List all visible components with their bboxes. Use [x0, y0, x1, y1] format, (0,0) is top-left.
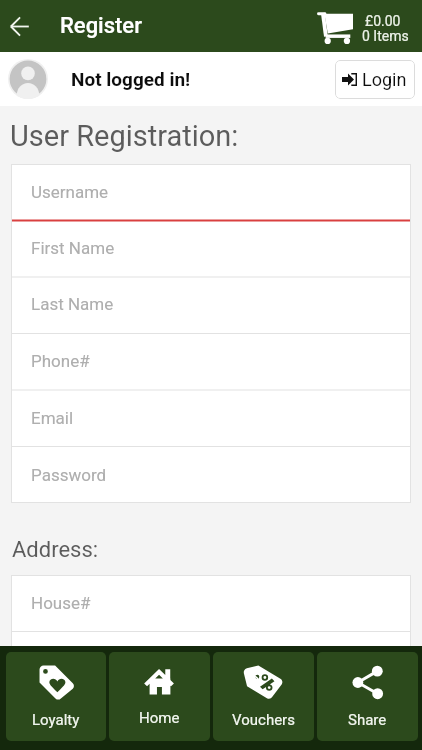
- button[interactable]: First Name: [11, 220, 411, 276]
- staticText: Register: [60, 13, 142, 39]
- staticText: Login: [362, 69, 407, 90]
- button[interactable]: Share: [317, 652, 418, 741]
- button[interactable]: House#: [11, 575, 411, 631]
- button[interactable]: Login: [335, 60, 415, 99]
- staticText: Phone#: [31, 351, 90, 371]
- button[interactable]: Loyalty: [6, 652, 106, 741]
- staticText: Street: [31, 650, 76, 670]
- staticText: Last Name: [31, 294, 114, 314]
- button[interactable]: Back: [0, 0, 38, 52]
- staticText: Not logged in!: [71, 68, 191, 90]
- button[interactable]: Street: [11, 631, 411, 688]
- staticText: Email: [31, 408, 74, 428]
- staticText: User Registration:: [10, 119, 239, 153]
- button[interactable]: £0.00: [317, 0, 422, 52]
- staticText: Password: [31, 465, 107, 485]
- staticText: £0.00: [365, 13, 401, 29]
- staticText: Home: [139, 709, 180, 727]
- staticText: Loyalty: [32, 711, 80, 729]
- button[interactable]: Last Name: [11, 276, 411, 332]
- button[interactable]: Home: [109, 652, 210, 741]
- staticText: First Name: [31, 238, 115, 258]
- button[interactable]: Vouchers: [213, 652, 314, 741]
- button[interactable]: Email: [11, 389, 411, 446]
- button[interactable]: Password: [11, 446, 411, 503]
- staticText: Vouchers: [232, 711, 295, 729]
- button[interactable]: Username: [11, 164, 411, 220]
- staticText: Share: [348, 711, 387, 729]
- staticText: Username: [31, 182, 109, 202]
- staticText: 0 Items: [362, 28, 409, 44]
- button[interactable]: Phone#: [11, 332, 411, 389]
- staticText: House#: [31, 593, 91, 613]
- staticText: Address:: [12, 537, 99, 563]
